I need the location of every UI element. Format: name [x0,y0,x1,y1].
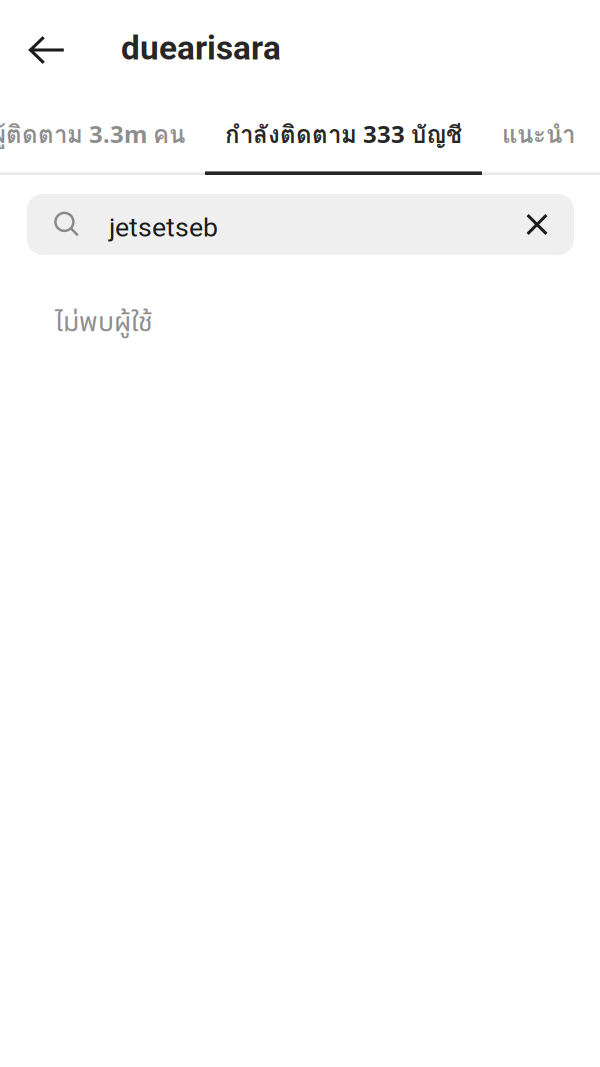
button[interactable]: Clear search [516,194,574,255]
staticText: แนะนำ [502,115,575,153]
staticText: ผู้ติดตาม 3.3m คน [0,115,185,153]
button[interactable]: แนะนำ [482,96,595,175]
button[interactable]: jetsetseb [27,194,574,255]
button[interactable]: Back [0,0,94,98]
staticText: กำลังติดตาม 333 บัญชี [225,115,462,153]
button[interactable]: ผู้ติดตาม 3.3m คน [0,96,205,175]
staticText: jetsetseb [109,212,218,243]
button[interactable]: กำลังติดตาม 333 บัญชี [205,96,482,175]
staticText: ไม่พบผู้ใช้ [55,303,153,343]
staticText: duearisara [121,28,281,68]
